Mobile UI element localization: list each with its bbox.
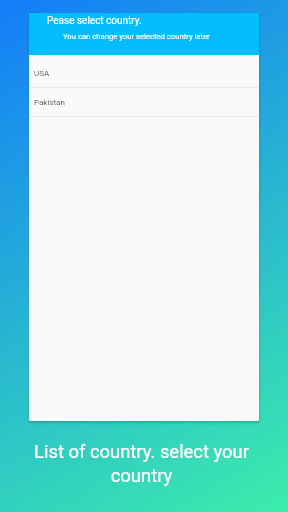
button[interactable]: Pakistan [29, 88, 259, 117]
staticText: List of country. select your country [22, 441, 261, 487]
staticText: USA [34, 69, 50, 78]
staticText: Pakistan [34, 98, 65, 107]
other: Select country dialog header [29, 13, 259, 55]
staticText: You can change your selected country lat… [63, 32, 210, 41]
staticText: Pease select country. [47, 15, 142, 27]
button[interactable]: USA [29, 59, 259, 88]
